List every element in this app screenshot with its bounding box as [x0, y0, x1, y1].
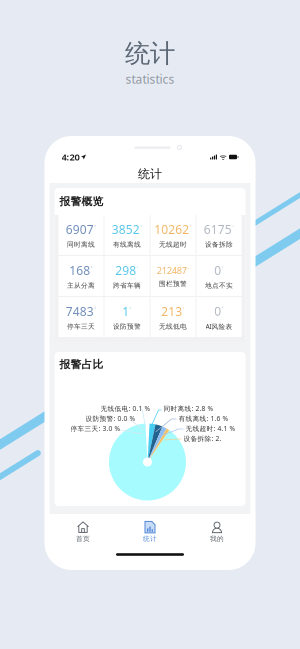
button[interactable]: 我的	[183, 514, 250, 550]
staticText: 设防预警	[113, 322, 141, 331]
button[interactable]: 7483	[58, 297, 103, 337]
staticText: 统计	[138, 167, 162, 181]
button[interactable]: 1	[104, 297, 149, 337]
staticText: AI风险表	[205, 322, 232, 331]
staticText: 同时离线	[67, 240, 95, 249]
button[interactable]: 6175	[196, 215, 241, 255]
button[interactable]: 统计	[116, 514, 183, 550]
staticText: 统计	[125, 38, 175, 69]
staticText: 报警占比	[59, 358, 103, 371]
staticText: statistics	[125, 71, 174, 87]
staticText: 298	[115, 262, 136, 278]
staticText: 0	[214, 262, 221, 278]
staticText: ·	[222, 303, 224, 312]
button[interactable]: 6907	[58, 215, 103, 255]
staticText: 跨省车辆	[113, 281, 141, 290]
staticText: 报警概览	[59, 195, 103, 208]
staticText: 首页	[76, 535, 90, 543]
staticText: ·	[222, 262, 224, 271]
staticText: ·	[190, 221, 192, 230]
staticText: ·	[130, 303, 132, 312]
staticText: 设备拆除: 2.	[183, 434, 221, 443]
staticText: 10262	[154, 221, 189, 237]
staticText: 1	[122, 303, 129, 319]
staticText: 设备拆除	[205, 240, 233, 249]
button[interactable]: 213	[150, 297, 195, 337]
staticText: 4:20	[61, 151, 79, 163]
button[interactable]: 0	[196, 297, 241, 337]
staticText: 无线超时	[159, 240, 187, 249]
staticText: ᯤ	[219, 152, 226, 162]
button[interactable]: 0	[196, 256, 241, 296]
staticText: 设防预警: 0.0 %	[85, 414, 135, 423]
staticText: 同时离线: 2.8 %	[163, 404, 213, 413]
staticText: ·	[94, 303, 96, 312]
staticText: 无线低电: 0.1 %	[100, 404, 150, 413]
staticText: 我的	[210, 535, 224, 543]
staticText: 地点不实	[205, 281, 233, 290]
staticText: 主从分离	[67, 281, 95, 290]
staticText: ·	[91, 262, 93, 271]
staticText: ·	[140, 221, 142, 230]
staticText: 无线低电	[159, 322, 187, 331]
staticText: 有线离线: 1.6 %	[178, 414, 228, 423]
staticText: 有线离线	[113, 240, 141, 249]
staticText: 213	[161, 303, 182, 319]
button[interactable]: 212487	[150, 256, 195, 296]
button[interactable]: 298	[104, 256, 149, 296]
staticText: 停车三天	[67, 322, 95, 331]
staticText: 无线超时: 4.1 %	[185, 424, 235, 433]
staticText: 统计	[143, 535, 157, 543]
button[interactable]: 168	[58, 256, 103, 296]
staticText: 0	[214, 303, 221, 319]
staticText: 212487	[157, 264, 187, 277]
staticText: 7483	[66, 303, 94, 319]
staticText: 6175	[204, 221, 232, 237]
staticText: 停车三天: 3.0 %	[70, 424, 120, 433]
staticText: ·	[137, 262, 139, 271]
staticText: ·	[94, 221, 96, 230]
staticText: 3852	[112, 221, 140, 237]
staticText: ·	[232, 221, 234, 230]
staticText: 6907	[66, 221, 94, 237]
button[interactable]: 10262	[150, 215, 195, 255]
staticText: ·	[183, 303, 185, 312]
staticText: 围栏预警	[159, 280, 187, 288]
button[interactable]: 3852	[104, 215, 149, 255]
staticText: ·	[187, 264, 189, 273]
staticText: 168	[69, 262, 90, 278]
button[interactable]: 首页	[49, 514, 116, 550]
